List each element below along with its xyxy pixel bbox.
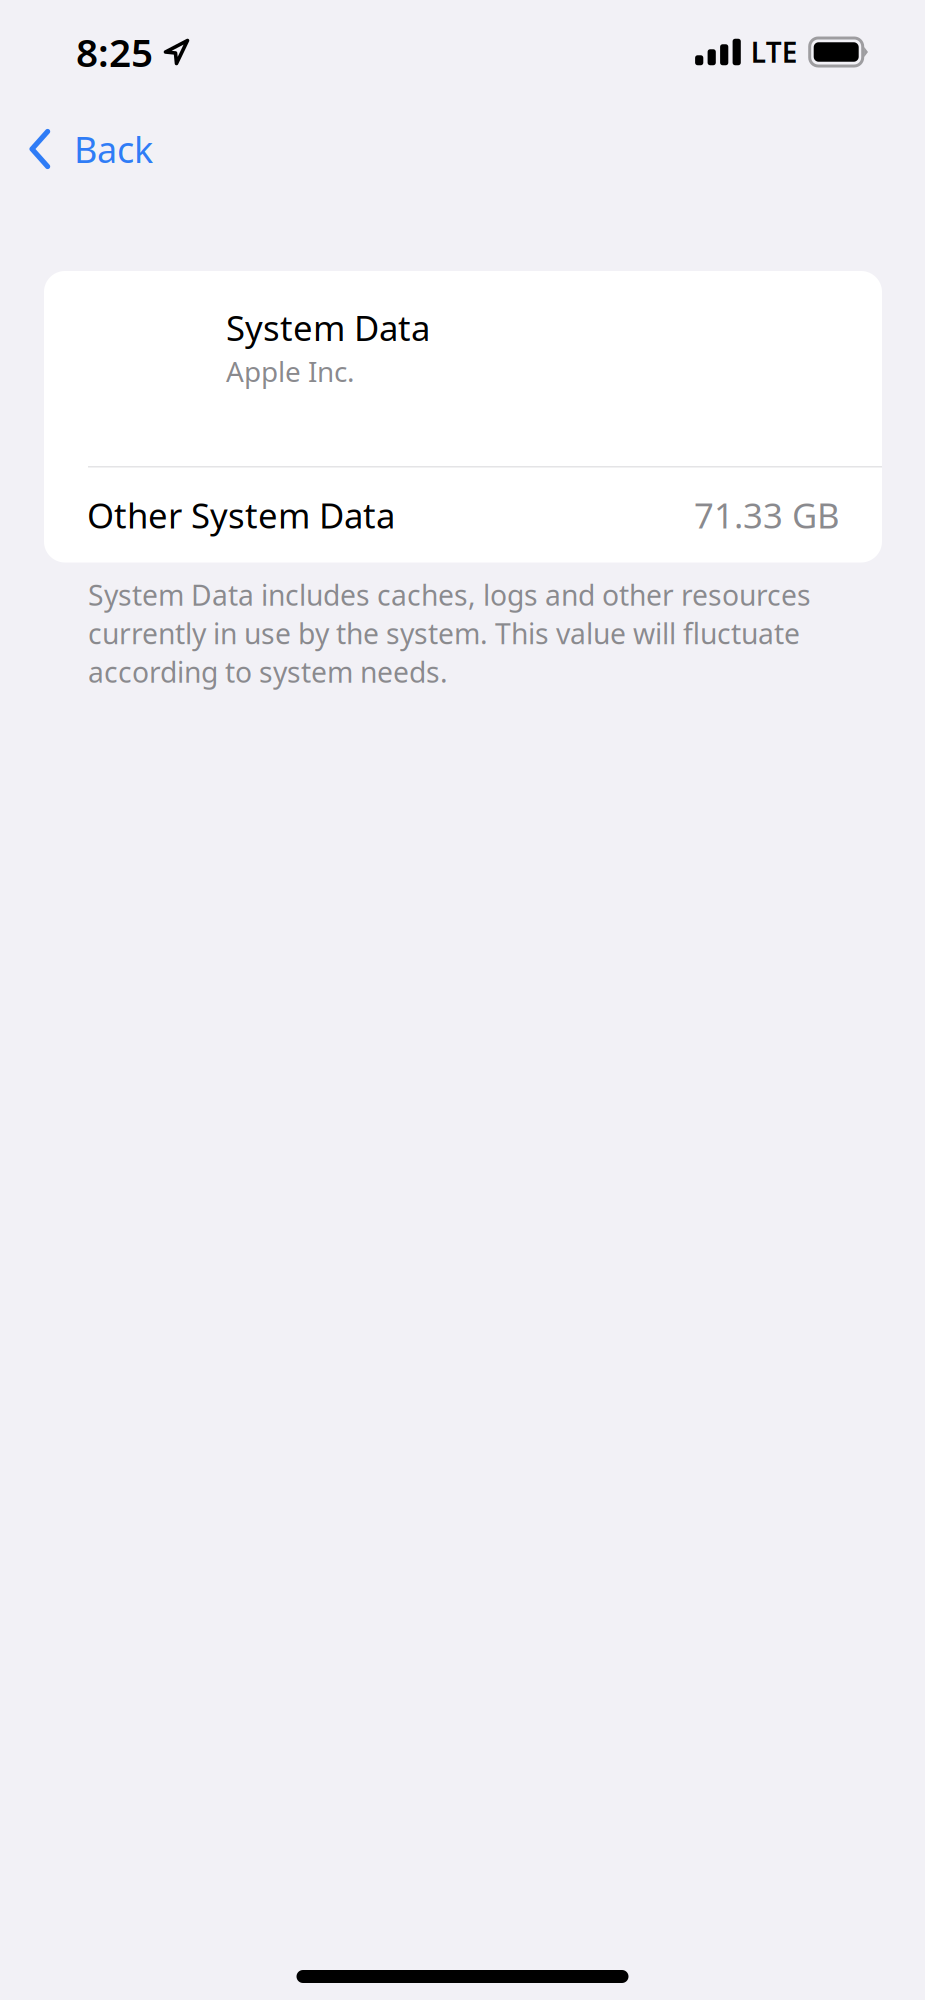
- staticText: LTE: [751, 33, 798, 71]
- staticText: 71.33 GB: [694, 491, 840, 539]
- staticText: Other System Data: [87, 491, 395, 539]
- staticText: 8:25: [76, 26, 153, 78]
- staticText: Back: [74, 124, 153, 173]
- staticText: System Data includes caches, logs and ot…: [88, 575, 811, 691]
- staticText: System Data: [226, 304, 430, 351]
- button[interactable]: Back: [0, 104, 177, 194]
- staticText: Apple Inc.: [226, 352, 354, 390]
- button[interactable]: Other System Data: [44, 467, 882, 562]
